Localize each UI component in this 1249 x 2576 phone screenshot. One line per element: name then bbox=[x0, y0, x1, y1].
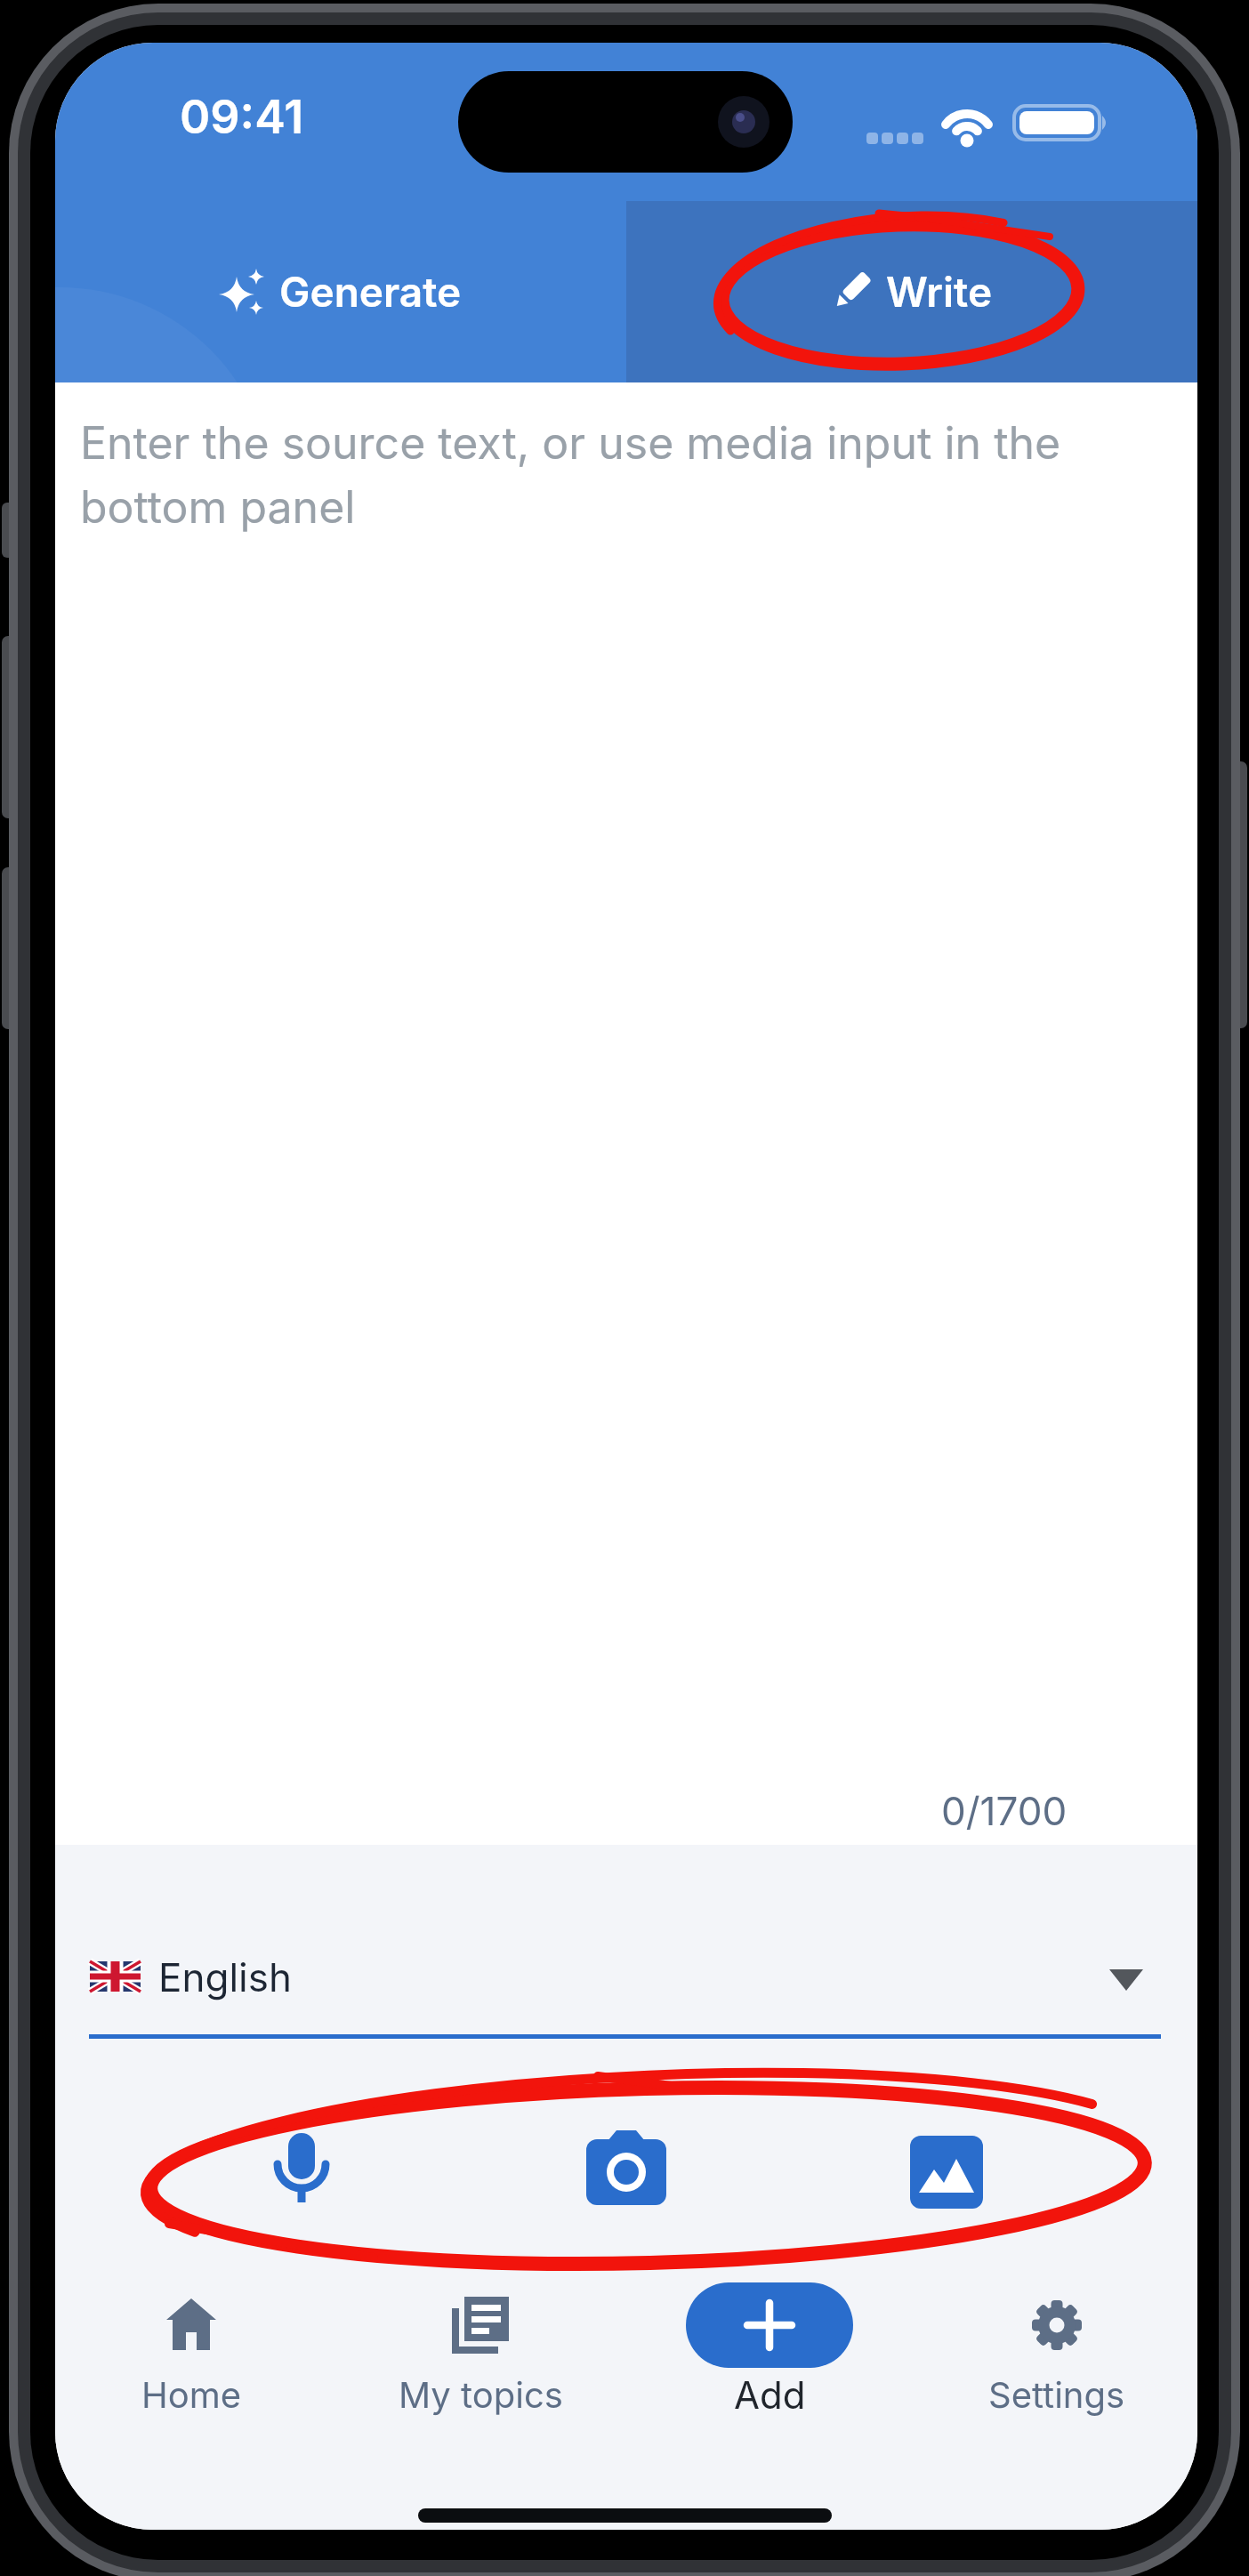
button[interactable]: Write bbox=[626, 201, 1197, 382]
button[interactable]: Generate bbox=[55, 201, 626, 382]
button[interactable]: Settings bbox=[932, 2263, 1181, 2485]
staticText: Write bbox=[886, 267, 993, 317]
staticText: 0/1700 bbox=[941, 1787, 1068, 1834]
button[interactable] bbox=[885, 2111, 1010, 2235]
staticText: Settings bbox=[988, 2373, 1125, 2416]
staticText: Add bbox=[734, 2372, 806, 2418]
button[interactable]: My topics bbox=[356, 2263, 605, 2485]
staticText: My topics bbox=[399, 2373, 563, 2416]
button[interactable]: Home bbox=[67, 2263, 316, 2485]
staticText: Generate bbox=[279, 267, 462, 317]
staticText: English bbox=[158, 1953, 292, 2000]
staticText: Home bbox=[141, 2373, 242, 2416]
button[interactable]: English bbox=[90, 1950, 1157, 2003]
button[interactable] bbox=[564, 2111, 689, 2235]
staticText: Enter the source text, or use media inpu… bbox=[80, 416, 1061, 534]
button[interactable] bbox=[239, 2111, 364, 2235]
staticText: 09:41 bbox=[180, 89, 304, 145]
button[interactable]: Add bbox=[686, 2263, 853, 2485]
